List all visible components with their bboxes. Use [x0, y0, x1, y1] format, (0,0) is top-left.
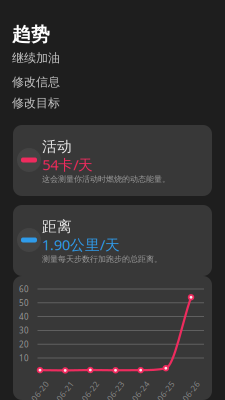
staticText: 1.90公里/天 [42, 235, 120, 254]
staticText: 10 [19, 353, 29, 363]
staticText: 活动 [42, 137, 72, 155]
staticText: 修改信息 [12, 75, 60, 89]
staticText: 06-23 [104, 386, 127, 396]
staticText: 继续加油 [12, 51, 60, 65]
staticText: 测量每天步数行加跑步的总距离。 [42, 254, 162, 264]
staticText: 距离 [42, 217, 72, 235]
staticText: 06-26 [179, 386, 202, 396]
staticText: 60 [19, 284, 29, 294]
staticText: 这会测量你活动时燃烧的动态能量。 [42, 174, 170, 184]
staticText: 40 [19, 311, 29, 322]
staticText: 50 [19, 298, 29, 308]
button[interactable]: 修改信息 [0, 71, 225, 93]
staticText: 06-21 [54, 386, 77, 396]
button[interactable]: 继续加油 [0, 47, 225, 69]
staticText: 06-25 [154, 386, 177, 396]
staticText: 54卡/天 [42, 155, 93, 174]
staticText: 趋势 [12, 23, 50, 46]
staticText: 30 [19, 325, 29, 336]
staticText: 06-24 [129, 386, 152, 396]
staticText: 06-20 [28, 386, 51, 396]
staticText: 06-22 [79, 386, 102, 396]
staticText: 修改目标 [12, 96, 60, 110]
button[interactable]: 修改目标 [0, 92, 225, 114]
staticText: 20 [19, 339, 29, 350]
